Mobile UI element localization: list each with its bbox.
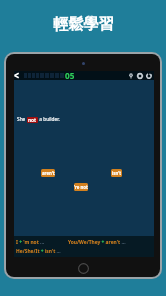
staticText: You/We/They + aren't ... [68,239,126,246]
staticText: 're not [74,184,88,190]
button[interactable]: isn't [111,169,122,177]
staticText: 05 [65,70,75,79]
button[interactable]: 're not [74,183,88,191]
staticText: aren't [42,170,55,176]
button[interactable]: Back [12,71,20,80]
staticText: She [17,116,27,123]
button[interactable]: aren't [41,169,55,177]
staticText: He/She/It + isn't ... [16,248,61,255]
button[interactable]: Settings [135,71,144,80]
staticText: isn't [112,170,122,176]
button[interactable]: Hint [126,71,135,80]
staticText: a builder. [38,116,60,123]
button[interactable]: Replay [144,71,153,80]
staticText: 輕鬆學習 [53,14,114,33]
staticText: not [28,117,37,123]
staticText: I + 'm not ... [16,239,45,246]
